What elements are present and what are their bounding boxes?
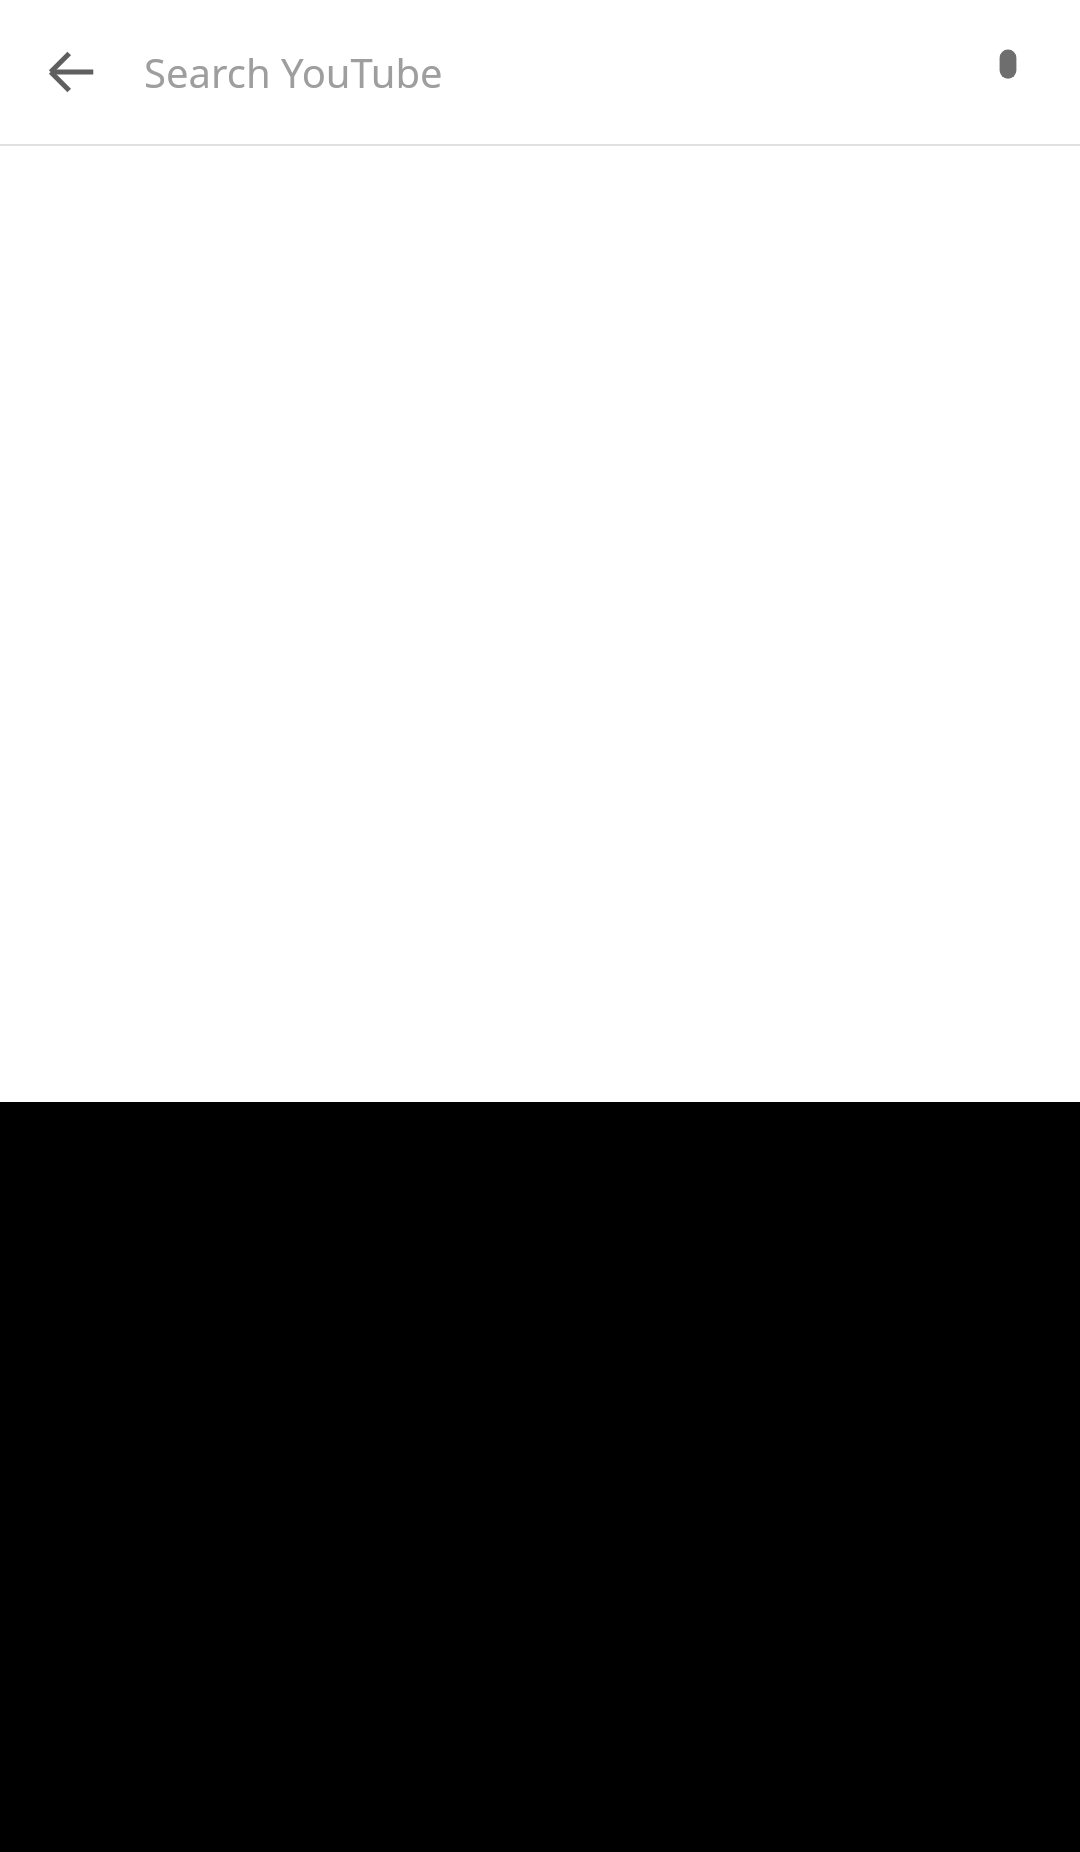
button[interactable]: Voice search [936, 0, 1080, 144]
staticText: Search YouTube [144, 45, 443, 99]
button[interactable]: Back [0, 0, 144, 144]
